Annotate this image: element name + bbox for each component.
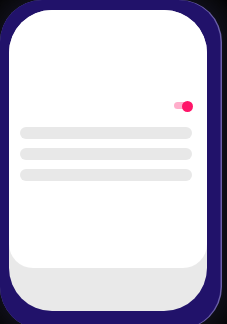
button[interactable]: Toggle xyxy=(174,102,192,109)
